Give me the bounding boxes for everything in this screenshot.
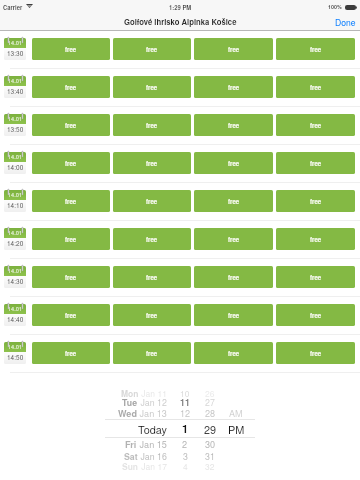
button[interactable]: free (32, 304, 110, 326)
button[interactable]: free (32, 114, 110, 136)
staticText: 14.01 (8, 305, 22, 313)
staticText: Sat (124, 450, 138, 463)
staticText: 14:40 (7, 315, 24, 324)
button[interactable]: free (113, 190, 191, 212)
button[interactable]: free (113, 76, 191, 98)
button[interactable]: free (32, 76, 110, 98)
staticText: PM (228, 421, 245, 437)
button[interactable]: free (32, 266, 110, 288)
button[interactable]: free (194, 114, 273, 136)
staticText: Carrier (3, 3, 23, 11)
button[interactable]: free (276, 152, 355, 174)
button[interactable]: free (194, 190, 273, 212)
button[interactable]: free (113, 266, 191, 288)
staticText: free (310, 273, 322, 282)
staticText: free (228, 311, 240, 320)
staticText: free (228, 121, 240, 130)
button[interactable]: free (194, 228, 273, 250)
staticText: 14:00 (7, 163, 24, 172)
button[interactable]: free (194, 152, 273, 174)
button[interactable]: free (276, 38, 355, 60)
staticText: free (65, 83, 77, 92)
staticText: free (146, 273, 158, 282)
staticText: free (310, 45, 322, 54)
staticText: Sun (122, 460, 139, 472)
staticText: free (310, 349, 322, 358)
staticText: free (228, 349, 240, 358)
staticText: 14.01 (8, 343, 22, 351)
staticText: free (65, 197, 77, 206)
staticText: free (65, 235, 77, 244)
staticText: 29 (204, 421, 217, 437)
staticText: Jan 11 (139, 387, 167, 399)
staticText: Fri (125, 438, 137, 451)
staticText: 28 (205, 407, 216, 420)
staticText: free (228, 45, 240, 54)
button[interactable]: free (276, 190, 355, 212)
staticText: free (146, 197, 158, 206)
staticText: 14.01 (8, 191, 22, 199)
staticText: free (228, 83, 240, 92)
staticText: free (65, 273, 77, 282)
button[interactable]: free (194, 76, 273, 98)
button[interactable]: free (276, 342, 355, 364)
staticText: 14.01 (8, 115, 22, 123)
staticText: free (228, 159, 240, 168)
staticText: free (310, 121, 322, 130)
staticText: 14.01 (8, 77, 22, 85)
staticText: 13:30 (7, 49, 24, 58)
button[interactable]: free (113, 304, 191, 326)
staticText: free (146, 83, 158, 92)
staticText: 31 (205, 450, 215, 463)
button[interactable]: free (276, 76, 355, 98)
button[interactable]: free (32, 152, 110, 174)
staticText: free (65, 159, 77, 168)
button[interactable]: free (113, 152, 191, 174)
staticText: 1 (182, 421, 189, 437)
staticText: 14:20 (7, 239, 24, 248)
staticText: Jan 12 (138, 396, 167, 409)
staticText: 30 (205, 438, 216, 451)
button[interactable]: free (32, 342, 110, 364)
staticText: AM (229, 407, 243, 420)
button[interactable]: free (113, 114, 191, 136)
staticText: 3 (183, 450, 188, 463)
staticText: Done (335, 16, 356, 27)
staticText: free (310, 83, 322, 92)
button[interactable]: free (194, 38, 273, 60)
staticText: free (65, 121, 77, 130)
button[interactable]: free (194, 304, 273, 326)
staticText: 27 (205, 396, 215, 409)
staticText: Jan 16 (138, 450, 167, 463)
staticText: 11 (180, 396, 190, 409)
button[interactable]: free (32, 190, 110, 212)
button[interactable]: free (113, 342, 191, 364)
button[interactable]: free (32, 228, 110, 250)
staticText: Jan 15 (137, 438, 167, 451)
staticText: 13:40 (7, 87, 24, 96)
staticText: free (228, 273, 240, 282)
button[interactable]: free (276, 114, 355, 136)
staticText: free (146, 45, 158, 54)
staticText: 14.01 (8, 39, 22, 47)
button[interactable]: free (276, 228, 355, 250)
button[interactable]: free (276, 304, 355, 326)
staticText: 14:10 (7, 201, 24, 210)
button[interactable]: Done (325, 13, 360, 30)
staticText: free (228, 235, 240, 244)
staticText: Today (138, 421, 168, 437)
staticText: free (310, 159, 322, 168)
button[interactable]: free (276, 266, 355, 288)
staticText: 1:29 PM (169, 3, 192, 11)
button[interactable]: free (194, 266, 273, 288)
button[interactable]: free (113, 38, 191, 60)
button[interactable]: free (32, 38, 110, 60)
staticText: Golfové ihrisko Alpinka Košice (124, 16, 237, 27)
staticText: free (310, 197, 322, 206)
button[interactable]: free (113, 228, 191, 250)
button[interactable]: free (194, 342, 273, 364)
staticText: 26 (205, 387, 215, 399)
staticText: free (65, 45, 77, 54)
staticText: free (146, 121, 158, 130)
staticText: Mon (121, 387, 139, 399)
